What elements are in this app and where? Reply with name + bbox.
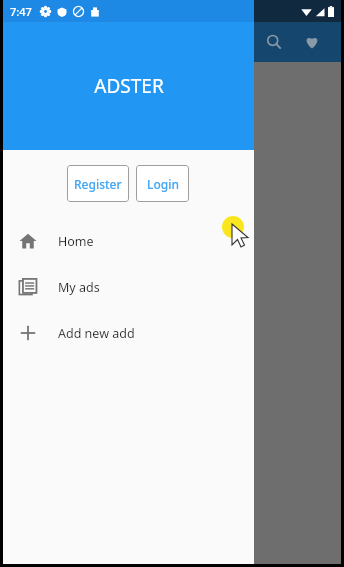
button[interactable]: Search [259, 27, 289, 57]
staticText: 7:47 [10, 4, 32, 19]
staticText: Login [147, 176, 179, 192]
staticText: ADSTER [94, 73, 164, 99]
staticText: Home [58, 233, 94, 250]
button[interactable]: Register [67, 165, 129, 202]
button[interactable]: Home [3, 218, 254, 264]
staticText: Add new add [58, 325, 135, 342]
button[interactable]: My ads [3, 264, 254, 310]
button[interactable]: Add new add [3, 310, 254, 356]
button[interactable]: Favorites [297, 27, 327, 57]
button[interactable]: Login [136, 165, 189, 202]
staticText: Register [74, 176, 122, 192]
staticText: My ads [58, 279, 100, 296]
